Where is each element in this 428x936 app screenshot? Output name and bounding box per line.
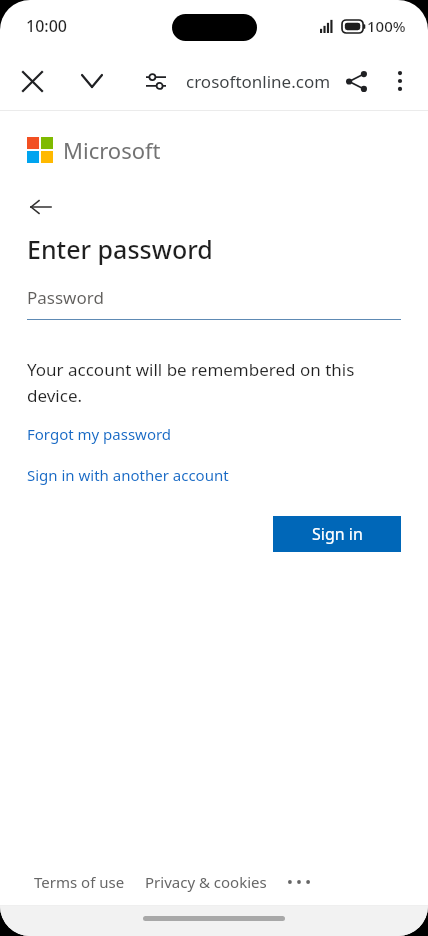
button[interactable]: Page info	[132, 57, 180, 105]
staticText: Terms of use	[34, 872, 125, 892]
button[interactable]: Expand	[68, 57, 116, 105]
button[interactable]: Share	[332, 57, 380, 105]
button[interactable]: Terms of use	[34, 872, 125, 892]
button[interactable]: More	[285, 872, 313, 892]
button[interactable]: Privacy & cookies	[145, 872, 267, 892]
staticText: Your account will be remembered on this …	[27, 358, 355, 407]
button[interactable]: Close	[8, 57, 56, 105]
button[interactable]: Password	[27, 286, 401, 320]
staticText: Sign in	[312, 523, 363, 545]
button[interactable]: Sign in with another account	[27, 465, 229, 485]
staticText: Forgot my password	[27, 424, 172, 444]
staticText: Microsoft	[63, 135, 161, 165]
staticText: Sign in with another account	[27, 465, 229, 485]
staticText: 100%	[367, 16, 406, 36]
button[interactable]: More options	[376, 57, 424, 105]
button[interactable]: Back	[20, 186, 62, 228]
button[interactable]: Sign in	[273, 516, 401, 552]
staticText: 10:00	[26, 15, 67, 37]
staticText: Privacy & cookies	[145, 872, 267, 892]
staticText: Password	[27, 286, 104, 309]
button[interactable]: Forgot my password	[27, 424, 172, 444]
staticText: crosoftonline.com	[186, 70, 374, 93]
staticText: Enter password	[27, 232, 213, 266]
